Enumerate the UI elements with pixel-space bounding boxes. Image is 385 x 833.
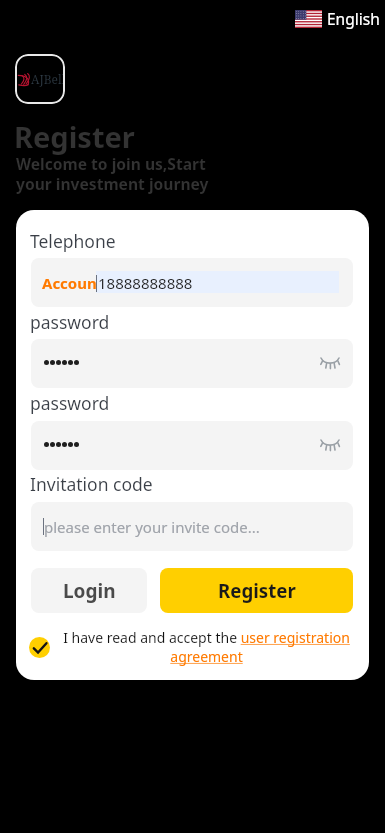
staticText: Telephone xyxy=(30,229,116,253)
staticText: password xyxy=(30,391,110,415)
staticText: password xyxy=(30,310,110,334)
staticText: Welcome to join us,Start your investment… xyxy=(16,153,209,195)
staticText: please enter your invite code... xyxy=(44,517,260,537)
button[interactable]: AJ Bell logo xyxy=(15,54,65,104)
staticText: I have read and accept the user registra… xyxy=(60,628,353,666)
button[interactable]: Show password xyxy=(31,421,353,470)
button[interactable]: Show password xyxy=(311,341,349,379)
button[interactable]: Show password xyxy=(311,423,349,461)
button[interactable]: I have read and accept the user registra… xyxy=(29,628,353,666)
button[interactable]: Register xyxy=(160,568,353,613)
staticText: Invitation code xyxy=(30,472,153,496)
staticText: 18888888888 xyxy=(98,273,193,293)
staticText: AJBell xyxy=(31,71,65,87)
button[interactable]: Show password xyxy=(31,339,353,388)
staticText: Register xyxy=(14,117,135,156)
staticText: Accoun xyxy=(42,273,97,293)
button[interactable]: please enter your invite code... xyxy=(31,502,353,551)
staticText: Register xyxy=(218,578,296,603)
button[interactable]: Login xyxy=(31,568,147,613)
button[interactable]: Accoun xyxy=(31,258,353,307)
staticText: Login xyxy=(63,578,116,604)
button[interactable]: English xyxy=(291,4,384,33)
staticText: English xyxy=(327,8,380,29)
